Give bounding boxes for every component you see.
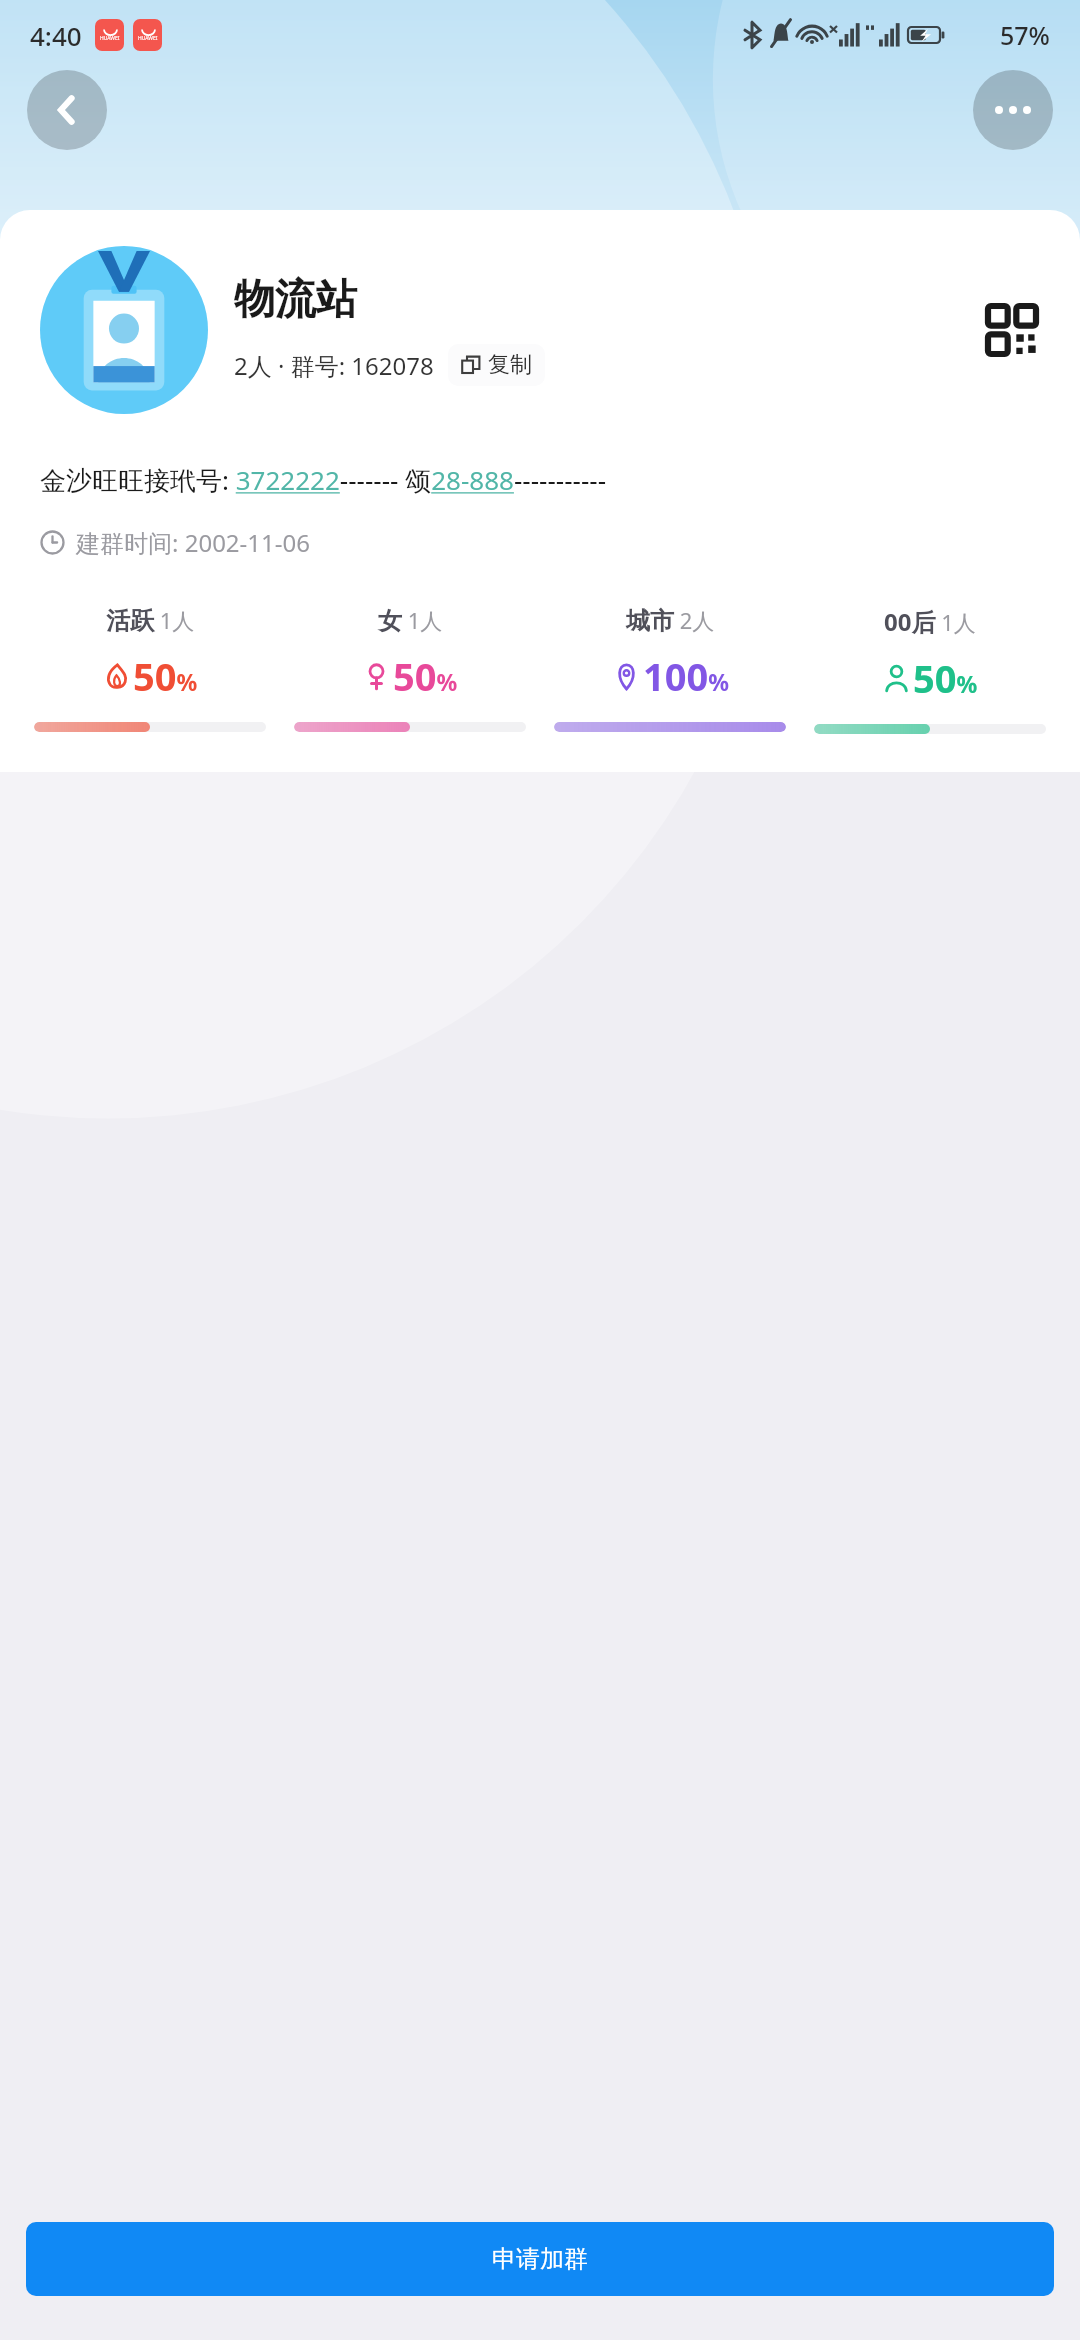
staticText: 100%: [643, 650, 729, 702]
staticText: 建群时间: 2002-11-06: [76, 526, 310, 559]
button[interactable]: 申请加群: [26, 2222, 1054, 2296]
button[interactable]: 女 1人: [294, 605, 526, 732]
button[interactable]: 城市 2人: [554, 605, 786, 732]
button[interactable]: 复制: [461, 351, 532, 379]
button[interactable]: More options: [973, 70, 1053, 150]
button[interactable]: Group QR code: [980, 298, 1044, 362]
button[interactable]: Back: [27, 70, 107, 150]
staticText: 复制: [488, 351, 532, 379]
staticText: 50%: [133, 650, 198, 702]
staticText: 50%: [913, 652, 978, 704]
staticText: 50%: [393, 650, 458, 702]
staticText: 00后 1人: [884, 605, 976, 638]
button[interactable]: 活跃 1人: [34, 605, 266, 732]
button[interactable]: 00后 1人: [814, 605, 1046, 734]
staticText: 女 1人: [378, 605, 443, 636]
staticText: 物流站: [234, 274, 357, 326]
staticText: HUAWEI: [138, 35, 158, 42]
staticText: 金沙旺旺接玳号: 3722222------- 颂28-888---------…: [40, 462, 607, 498]
staticText: 申请加群: [492, 2244, 588, 2274]
staticText: 57%: [1000, 18, 1050, 52]
staticText: 4:40: [30, 18, 82, 53]
staticText: 2人 · 群号: 162078: [234, 349, 434, 382]
staticText: HUAWEI: [100, 35, 120, 42]
staticText: 活跃 1人: [106, 605, 195, 636]
staticText: 城市 2人: [626, 605, 715, 636]
